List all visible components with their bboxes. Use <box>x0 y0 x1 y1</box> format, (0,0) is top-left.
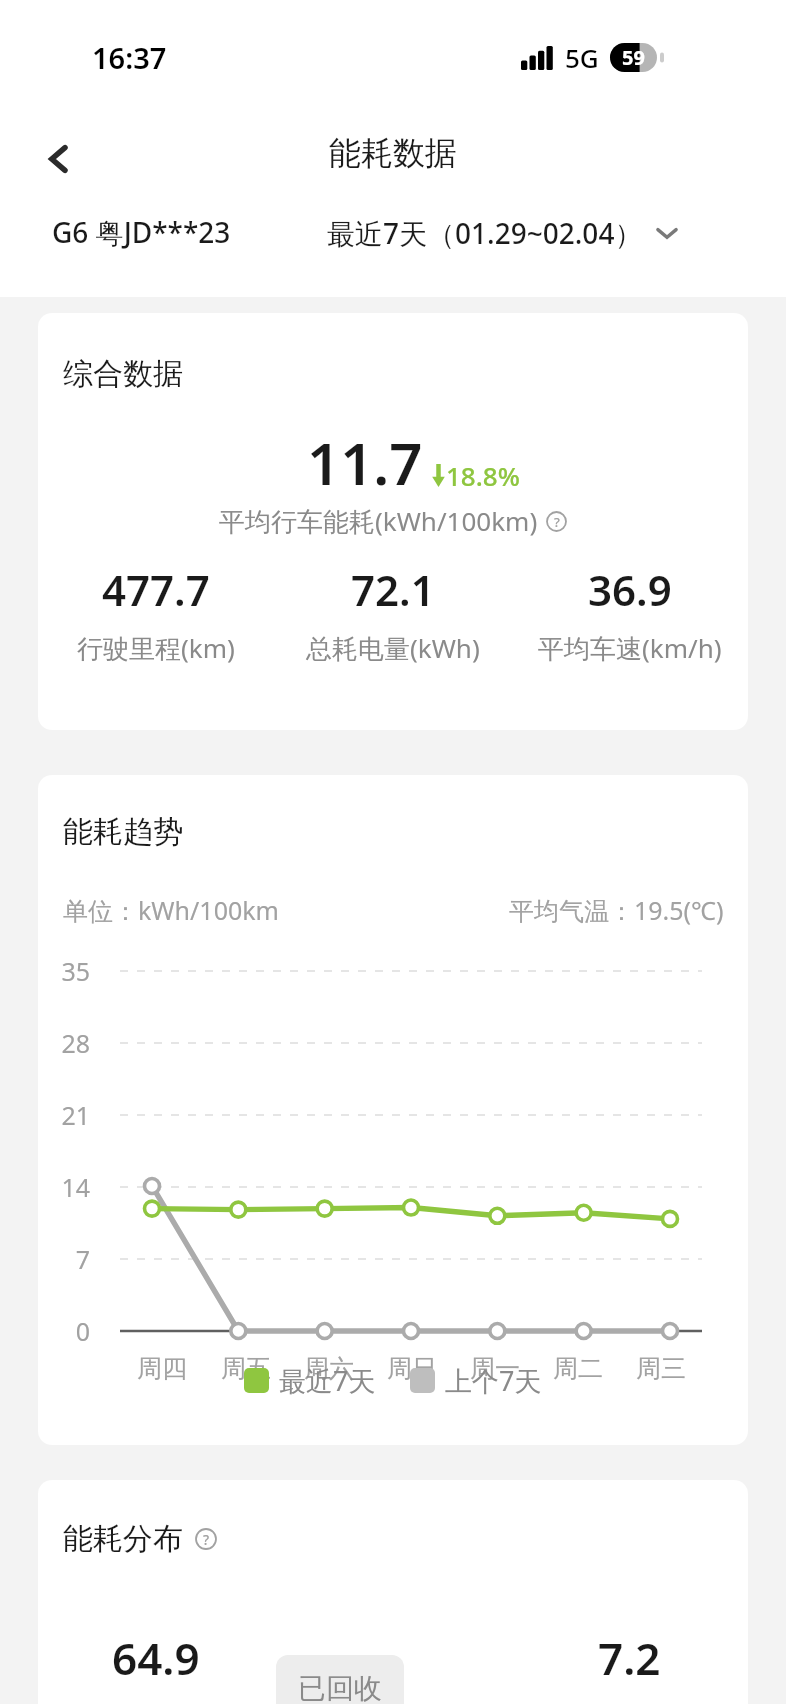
staticText: 28 <box>38 1026 90 1060</box>
staticText: 单位：kWh/100km <box>63 893 279 927</box>
staticText: 最近7天（01.29~02.04） <box>327 214 643 252</box>
staticText: 11.7 <box>307 423 423 502</box>
staticText: 477.7 <box>102 561 210 618</box>
staticText: 周二 <box>553 1353 603 1384</box>
staticText: 已回收 <box>298 1671 382 1704</box>
staticText: 周一 <box>470 1353 520 1384</box>
staticText: 5G <box>565 40 599 75</box>
staticText: 能耗数据 <box>329 133 457 173</box>
staticText: 36.9 <box>588 561 672 618</box>
staticText: 能耗分布 <box>63 1520 183 1558</box>
staticText: 总耗电量(kWh) <box>306 630 480 666</box>
staticText: ? <box>203 1530 210 1549</box>
staticText: 周五 <box>221 1353 271 1384</box>
staticText: 最近7天 <box>279 1362 376 1399</box>
staticText: ? <box>554 513 560 531</box>
staticText: 59 <box>622 44 645 71</box>
staticText: 7 <box>38 1242 90 1276</box>
staticText: 综合数据 <box>63 355 183 393</box>
staticText: 平均行车能耗(kWh/100km) <box>219 503 538 539</box>
staticText: 周六 <box>304 1353 354 1384</box>
button[interactable]: Back <box>28 128 90 190</box>
staticText: 平均车速(km/h) <box>538 630 722 666</box>
staticText: 0 <box>38 1314 90 1348</box>
staticText: 周三 <box>636 1353 686 1384</box>
staticText: 周四 <box>137 1353 187 1384</box>
staticText: G6 粤JD***23 <box>52 213 231 251</box>
staticText: 16:37 <box>92 38 167 77</box>
staticText: 行驶里程(km) <box>77 630 235 666</box>
staticText: 周日 <box>387 1353 437 1384</box>
button[interactable]: 最近7天（01.29~02.04） <box>327 208 679 258</box>
staticText: 18.8% <box>446 458 520 493</box>
staticText: 上个7天 <box>445 1362 542 1399</box>
staticText: 平均气温：19.5(℃) <box>509 893 724 927</box>
staticText: 7.2 <box>598 1628 661 1688</box>
staticText: 64.9 <box>112 1628 200 1688</box>
staticText: 35 <box>38 954 90 988</box>
staticText: 14 <box>38 1170 90 1204</box>
staticText: 21 <box>38 1098 90 1132</box>
staticText: 能耗趋势 <box>63 813 183 851</box>
staticText: 72.1 <box>351 561 435 618</box>
